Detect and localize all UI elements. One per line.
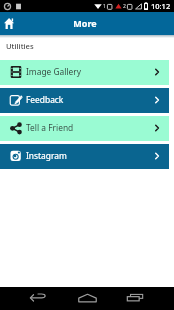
staticText: Instagram — [26, 150, 67, 161]
staticText: Image Gallery — [26, 66, 82, 77]
button[interactable]: Recent apps — [117, 287, 153, 310]
button[interactable]: Home — [69, 287, 105, 310]
button[interactable]: Image Gallery — [0, 60, 169, 85]
button[interactable]: Feedback — [0, 88, 169, 113]
button[interactable]: Tell a Friend — [0, 116, 169, 141]
staticText: Tell a Friend — [26, 122, 74, 133]
staticText: 1 — [103, 3, 106, 10]
button[interactable]: Back — [20, 287, 56, 310]
staticText: More — [73, 17, 97, 29]
staticText: Feedback — [26, 94, 64, 105]
staticText: Utilities — [6, 41, 34, 51]
staticText: 10:12 — [151, 1, 171, 11]
staticText: 2 — [123, 3, 126, 10]
button[interactable]: Home — [0, 12, 20, 35]
button[interactable]: Instagram — [0, 144, 169, 169]
